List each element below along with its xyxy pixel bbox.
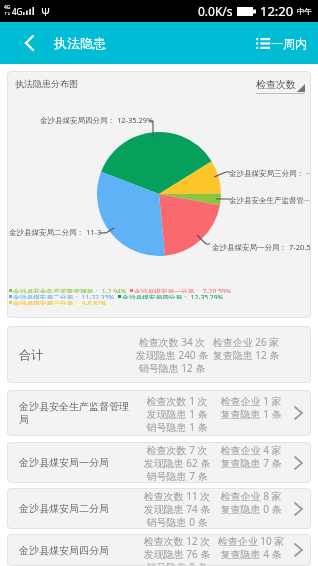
- staticText: 检查次数 11 次: [140, 489, 214, 502]
- staticText: 检查次数 7 次: [140, 443, 214, 456]
- staticText: 金沙县安全生产监督管理局: [19, 400, 133, 426]
- staticText: 检查次数 34 次: [135, 335, 209, 348]
- staticText: 发现隐患 74 条: [140, 502, 214, 515]
- staticText: 销号隐患 12 条: [135, 361, 209, 374]
- staticText: 销号隐患 7 条: [140, 469, 214, 482]
- staticText: 销号隐患 1 条: [140, 420, 214, 433]
- staticText: 4G: [12, 6, 23, 17]
- staticText: 金沙县安全生产监督管理局： 1-2.94%: [13, 287, 127, 293]
- button[interactable]: 合计: [7, 326, 311, 383]
- staticText: 复查隐患 12 条: [209, 348, 283, 361]
- staticText: 检查次数 12 次: [140, 534, 214, 547]
- staticText: 销号隐患 0 条: [140, 560, 214, 566]
- staticText: 金沙县煤安局四分局: [19, 544, 133, 557]
- staticText: 发现隐患 62 条: [140, 456, 214, 469]
- staticText: 4G: [4, 4, 11, 11]
- staticText: 金沙县煤安局一分局: [19, 456, 133, 469]
- button[interactable]: 金沙县安全生产监督管理局: [7, 390, 311, 436]
- staticText: 检查次数: [256, 78, 296, 91]
- staticText: 检查企业 10 家: [214, 534, 288, 547]
- staticText: Ψ: [41, 4, 51, 19]
- button[interactable]: 金沙县煤安局二分局: [7, 488, 311, 529]
- staticText: 复查隐患 7 条: [214, 456, 288, 469]
- staticText: 发现隐患 76 条: [140, 547, 214, 560]
- staticText: 金沙县煤安局二分局: [19, 502, 133, 515]
- button[interactable]: 一周内: [256, 22, 307, 64]
- staticText: 12:20: [260, 2, 294, 20]
- staticText: 金沙县煤安局一分局： 7-20.59%: [134, 287, 232, 293]
- staticText: 执法隐患: [54, 35, 106, 51]
- button[interactable]: 金沙县煤安局一分局: [7, 442, 311, 483]
- staticText: 发现隐患 1 条: [140, 407, 214, 420]
- staticText: 金沙县煤安局二分局： 11-32.35%: [13, 293, 115, 299]
- staticText: 金沙县煤安局三分局： ···: [229, 168, 311, 178]
- staticText: 金沙县煤安局四分局： 12-35.29%: [40, 115, 154, 125]
- staticText: 检查企业 4 家: [214, 443, 288, 456]
- staticText: 一周内: [271, 36, 307, 51]
- staticText: ↑↓: [4, 11, 11, 16]
- button[interactable]: 金沙县煤安局四分局: [7, 534, 311, 566]
- staticText: 检查企业 1 家: [214, 394, 288, 407]
- staticText: 复查隐患 4 条: [214, 547, 288, 560]
- staticText: 中午: [297, 7, 312, 16]
- staticText: 金沙县安全生产监督管···: [229, 195, 311, 205]
- staticText: 合计: [19, 347, 43, 362]
- button[interactable]: Back: [5, 22, 53, 64]
- staticText: 执法隐患分布图: [15, 78, 78, 89]
- staticText: 金沙县煤安局一分局： 7-20.59%: [212, 242, 311, 252]
- staticText: 金沙县煤安局三分局： 3-8.82%: [13, 299, 107, 305]
- button[interactable]: 检查次数: [256, 76, 307, 96]
- staticText: 检查企业 26 家: [209, 335, 283, 348]
- staticText: 发现隐患 240 条: [135, 348, 209, 361]
- staticText: 检查次数 1 次: [140, 394, 214, 407]
- staticText: 检查企业 8 家: [214, 489, 288, 502]
- staticText: 金沙县煤安局二分局： 11-3··: [9, 227, 106, 237]
- staticText: 复查隐患 0 条: [214, 502, 288, 515]
- staticText: 销号隐患 0 条: [140, 515, 214, 528]
- staticText: 复查隐患 1 条: [214, 407, 288, 420]
- staticText: 0.0K/s: [198, 3, 233, 19]
- staticText: 金沙县煤安局四分局： 12-35.29%: [122, 293, 224, 299]
